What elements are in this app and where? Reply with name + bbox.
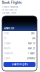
staticText: Return [4, 47, 10, 50]
staticText: Travelers [4, 52, 13, 55]
staticText: JFK [32, 37, 35, 40]
staticText: Search Flights [11, 63, 27, 66]
button[interactable]: Search Flights [3, 62, 35, 67]
button[interactable]: Return [4, 46, 35, 51]
button[interactable]: Depart [4, 41, 35, 46]
staticText: Search hundreds of airlines for the best… [2, 5, 18, 14]
button[interactable]: To [4, 36, 35, 41]
staticText: Mar 21 [28, 47, 35, 50]
button[interactable]: Travelers [4, 51, 35, 56]
staticText: Where to? [4, 27, 14, 30]
button[interactable]: Cabin [4, 56, 35, 61]
staticText: Mar 14 [28, 42, 35, 45]
staticText: Economy [27, 57, 35, 60]
staticText: From [4, 32, 9, 35]
staticText: SFO [31, 32, 35, 35]
staticText: Depart [4, 42, 11, 45]
staticText: Cabin [4, 57, 10, 60]
staticText: Book Flights [2, 1, 22, 4]
button[interactable]: From [4, 31, 35, 36]
staticText: To [4, 37, 6, 40]
staticText: 1 Adult [28, 52, 35, 55]
